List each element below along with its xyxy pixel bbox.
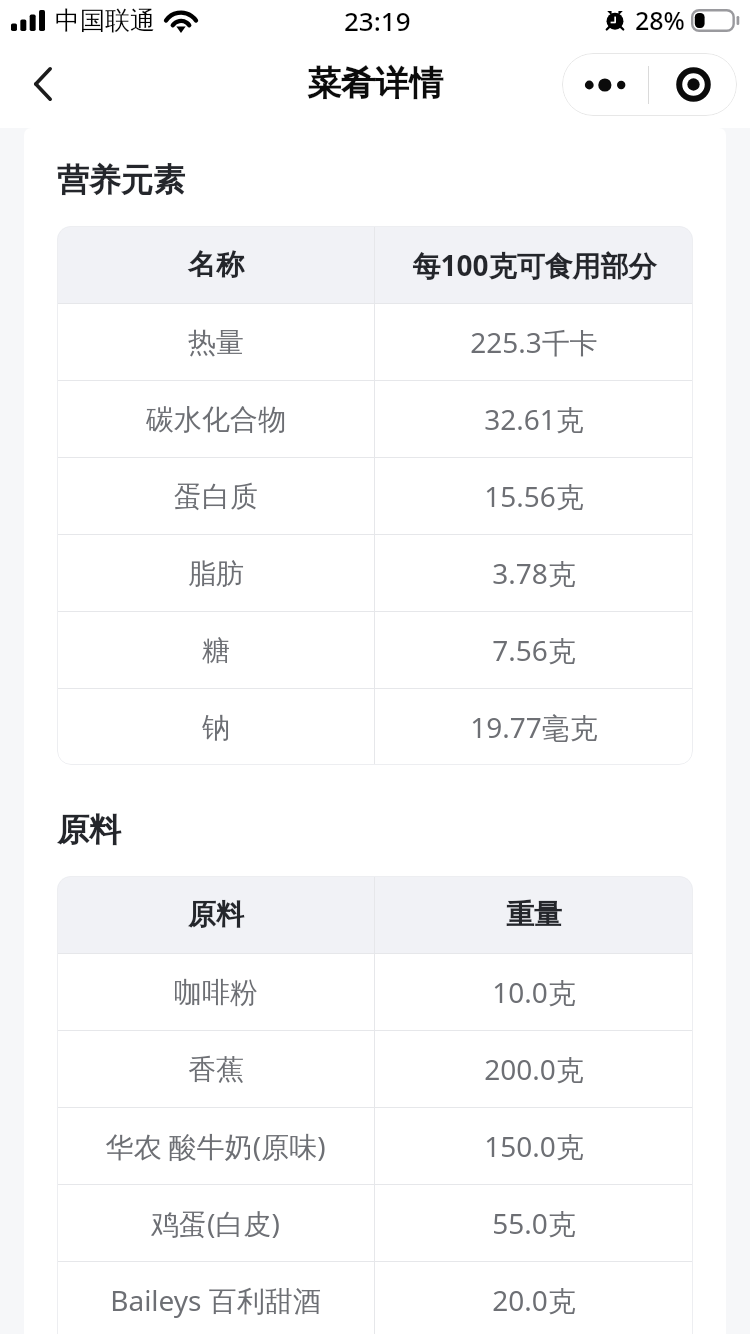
staticText: 脂肪: [188, 556, 244, 591]
staticText: 7.56克: [492, 631, 576, 669]
staticText: 3.78克: [492, 554, 576, 592]
staticText: 23:19: [344, 3, 411, 38]
staticText: 19.77毫克: [470, 708, 598, 746]
staticText: 营养元素: [57, 160, 185, 200]
staticText: 10.0克: [492, 973, 576, 1011]
staticText: 名称: [188, 247, 244, 282]
staticText: 225.3千卡: [470, 323, 598, 361]
staticText: Baileys 百利甜酒: [110, 1281, 321, 1319]
staticText: 150.0克: [484, 1127, 584, 1165]
staticText: 32.61克: [484, 400, 584, 438]
staticText: 55.0克: [492, 1204, 576, 1242]
staticText: 15.56克: [484, 477, 584, 515]
staticText: 糖: [202, 633, 230, 668]
staticText: 华农 酸牛奶(原味): [105, 1127, 326, 1165]
staticText: 热量: [188, 325, 244, 360]
staticText: 鸡蛋(白皮): [151, 1204, 280, 1242]
staticText: 原料: [57, 810, 121, 850]
staticText: 菜肴详情: [307, 62, 443, 105]
staticText: 200.0克: [484, 1050, 584, 1088]
button[interactable]: 更多: [562, 53, 737, 116]
button[interactable]: 返回: [14, 58, 74, 118]
staticText: 蛋白质: [174, 479, 258, 514]
staticText: 碳水化合物: [146, 402, 286, 437]
staticText: 钠: [202, 710, 230, 745]
staticText: 每100克可食用部分: [412, 246, 657, 284]
staticText: 20.0克: [492, 1281, 576, 1319]
staticText: 28%: [635, 3, 685, 37]
staticText: 原料: [188, 897, 244, 932]
staticText: 中国联通: [55, 5, 155, 36]
staticText: 香蕉: [188, 1052, 244, 1087]
staticText: 重量: [506, 897, 562, 932]
staticText: 咖啡粉: [174, 975, 258, 1010]
